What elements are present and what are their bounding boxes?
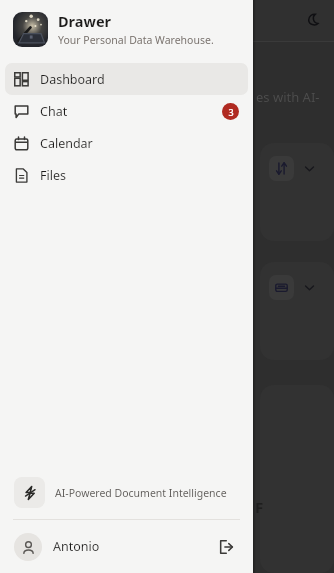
button[interactable]: Chat (5, 95, 248, 127)
staticText: AI-Powered Document Intelligence (55, 486, 227, 500)
staticText: es with AI- (256, 88, 320, 106)
staticText: Files (40, 167, 66, 184)
staticText: Antonio (53, 538, 100, 555)
button[interactable]: Dashboard (5, 63, 248, 95)
button[interactable]: Files (5, 159, 248, 191)
staticText: Drawer (58, 11, 112, 31)
staticText: Dashboard (40, 71, 105, 88)
staticText: Calendar (40, 135, 93, 152)
staticText: Your Personal Data Warehouse. (58, 33, 214, 47)
staticText: Chat (40, 103, 68, 120)
staticText: F (255, 497, 264, 517)
button[interactable]: Antonio (0, 520, 253, 573)
button[interactable]: Drawer (0, 0, 253, 58)
staticText: 3 (228, 106, 234, 118)
button[interactable] (260, 262, 334, 360)
button[interactable]: Sign out (213, 534, 239, 560)
button[interactable]: Calendar (5, 127, 248, 159)
button[interactable]: Toggle dark mode (299, 6, 328, 35)
button[interactable]: AI-Powered Document Intelligence (0, 477, 253, 508)
